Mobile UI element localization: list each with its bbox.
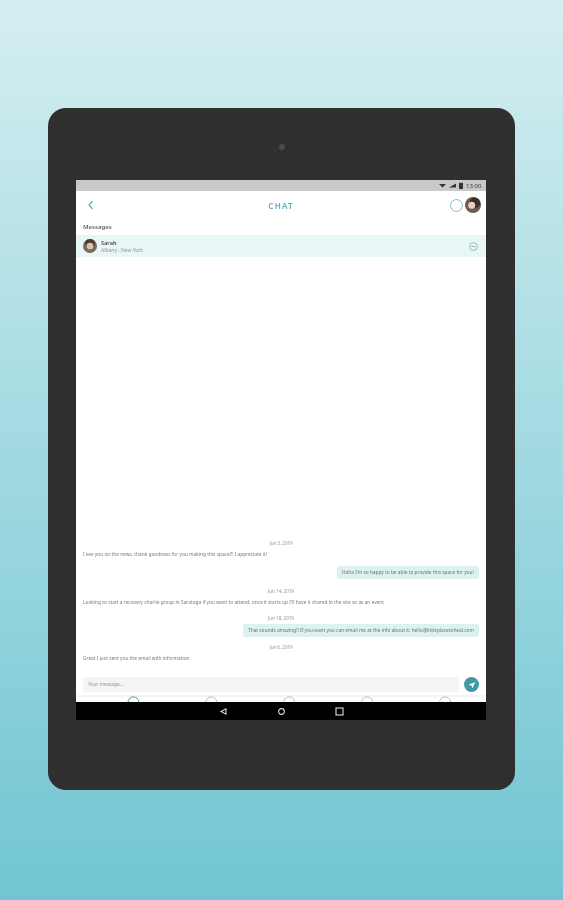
button[interactable]: Notifications: [450, 199, 463, 212]
staticText: Messages: [83, 223, 112, 231]
staticText: Haha I'm so happy to be able to provide …: [342, 569, 474, 576]
staticText: Jun 6, 2019: [269, 644, 293, 650]
button[interactable]: Your message...: [83, 677, 459, 692]
staticText: Your message...: [88, 681, 124, 688]
button[interactable]: Send: [464, 677, 479, 692]
button[interactable]: Recent apps: [331, 703, 347, 719]
button[interactable]: Sarah: [76, 235, 486, 257]
staticText: CHAT: [268, 200, 294, 211]
staticText: Albany , New York: [101, 247, 144, 254]
staticText: I see you on the news, thank goodness fo…: [83, 551, 267, 558]
button[interactable]: Back: [82, 196, 100, 214]
button[interactable]: Back: [215, 703, 231, 719]
button[interactable]: Block contact: [467, 240, 479, 252]
button[interactable]: Home: [273, 703, 289, 719]
staticText: That sounds amazing!! If you want you ca…: [248, 627, 474, 634]
staticText: Jun 18, 2019: [268, 615, 294, 621]
staticText: Great I just sent you the email with inf…: [83, 655, 190, 662]
staticText: Jun 14, 2019: [268, 588, 294, 594]
button[interactable]: Profile: [465, 197, 481, 213]
staticText: Looking to start a recovery charlie grou…: [83, 599, 384, 606]
staticText: Sarah: [101, 239, 117, 246]
staticText: 13:00: [466, 182, 482, 190]
staticText: Jun 3, 2019: [269, 540, 293, 546]
